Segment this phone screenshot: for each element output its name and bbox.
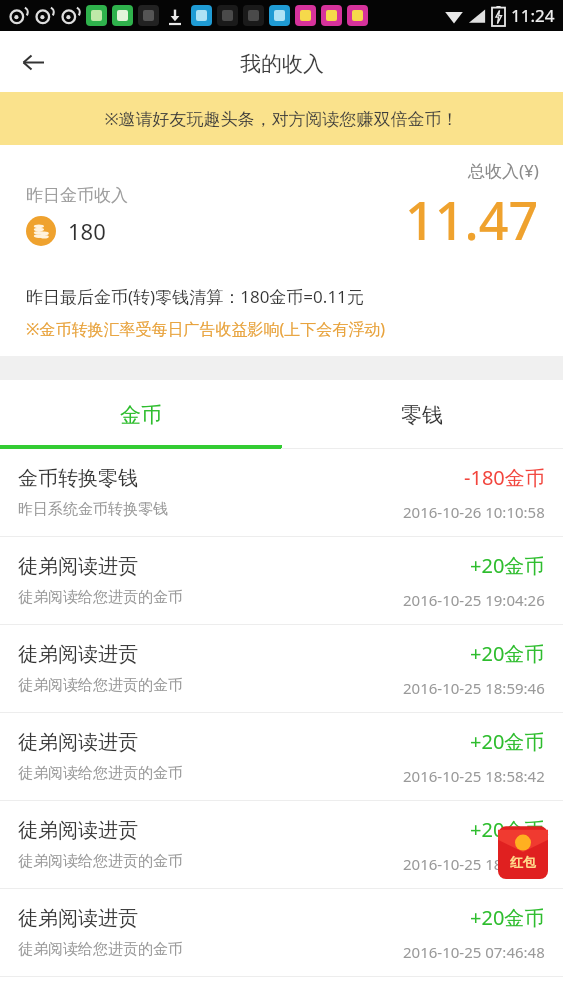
button[interactable]: 徒弟阅读进贡 bbox=[0, 889, 563, 977]
staticText: 11:24 bbox=[511, 4, 555, 27]
staticText: 零钱 bbox=[401, 402, 443, 428]
button[interactable]: 红包 Red packet bbox=[498, 823, 548, 879]
staticText: -180金币 bbox=[464, 464, 545, 491]
staticText: 徒弟阅读给您进贡的金币 bbox=[18, 676, 183, 695]
button[interactable]: 徒弟阅读进贡 bbox=[0, 801, 563, 889]
staticText: +20金币 bbox=[470, 552, 545, 579]
button[interactable]: 徒弟阅读进贡 bbox=[0, 625, 563, 713]
staticText: 我的收入 bbox=[240, 51, 324, 77]
staticText: 徒弟阅读给您进贡的金币 bbox=[18, 764, 183, 783]
staticText: 2016-10-25 19:04:26 bbox=[403, 590, 545, 610]
staticText: 昨日系统金币转换零钱 bbox=[18, 500, 168, 519]
button[interactable]: 徒弟阅读进贡 bbox=[0, 537, 563, 625]
staticText: 徒弟阅读进贡 bbox=[18, 730, 138, 755]
staticText: 徒弟阅读给您进贡的金币 bbox=[18, 852, 183, 871]
staticText: 昨日金币收入 bbox=[26, 185, 128, 206]
button[interactable]: Back bbox=[10, 39, 56, 85]
staticText: 11.47 bbox=[405, 184, 539, 255]
staticText: 2016-10-26 10:10:58 bbox=[403, 502, 545, 522]
staticText: 2016-10-25 18:58:42 bbox=[403, 766, 545, 786]
staticText: 180 bbox=[68, 216, 106, 246]
staticText: ※邀请好友玩趣头条，对方阅读您赚双倍金币！ bbox=[104, 107, 459, 130]
staticText: +20金币 bbox=[470, 728, 545, 755]
staticText: 金币 bbox=[120, 402, 162, 428]
staticText: 总收入(¥) bbox=[468, 159, 539, 182]
staticText: 金币转换零钱 bbox=[18, 466, 138, 491]
staticText: 昨日最后金币(转)零钱清算：180金币=0.11元 bbox=[26, 285, 364, 308]
staticText: +20金币 bbox=[470, 816, 545, 843]
staticText: 徒弟阅读进贡 bbox=[18, 554, 138, 579]
button[interactable]: 零钱 bbox=[281, 380, 563, 449]
staticText: 2016-10-25 07:46:48 bbox=[403, 942, 545, 962]
button[interactable]: 金币 bbox=[0, 380, 281, 449]
staticText: 徒弟阅读给您进贡的金币 bbox=[18, 940, 183, 959]
staticText: 徒弟阅读进贡 bbox=[18, 818, 138, 843]
staticText: +20金币 bbox=[470, 904, 545, 931]
staticText: 红包 bbox=[510, 854, 536, 870]
staticText: 2016-10-25 18:59:46 bbox=[403, 678, 545, 698]
button[interactable]: 徒弟阅读进贡 bbox=[0, 713, 563, 801]
staticText: 徒弟阅读进贡 bbox=[18, 642, 138, 667]
staticText: 徒弟阅读给您进贡的金币 bbox=[18, 588, 183, 607]
staticText: ※金币转换汇率受每日广告收益影响(上下会有浮动) bbox=[26, 318, 385, 340]
staticText: 徒弟阅读进贡 bbox=[18, 906, 138, 931]
staticText: 2016-10-25 18:56:26 bbox=[403, 854, 545, 874]
button[interactable]: 金币转换零钱 bbox=[0, 449, 563, 537]
staticText: +20金币 bbox=[470, 640, 545, 667]
